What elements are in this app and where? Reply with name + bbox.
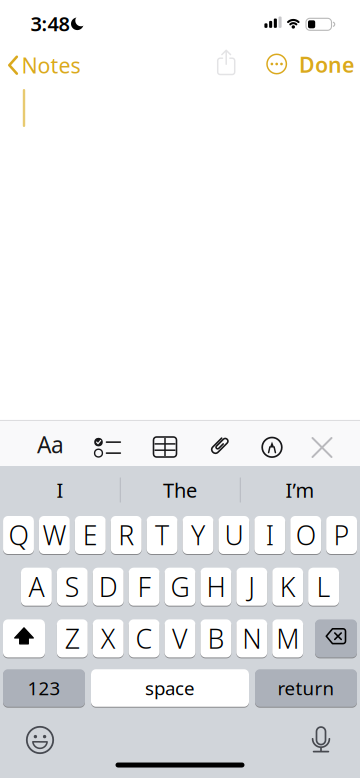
button[interactable]: The [123,473,237,507]
staticText: O [296,517,316,553]
button[interactable]: N [236,619,267,658]
staticText: R [118,517,134,553]
staticText: Notes [21,51,80,79]
staticText: F [138,569,151,604]
staticText: space [145,676,195,700]
button[interactable]: Z [57,619,88,658]
staticText: G [170,569,189,604]
staticText: C [136,621,153,656]
button[interactable]: F [129,567,160,606]
button[interactable] [266,53,287,74]
staticText: I [266,517,274,553]
staticText: T [155,517,169,553]
button[interactable] [260,435,284,459]
button[interactable] [153,437,176,457]
button[interactable]: G [165,567,195,606]
button[interactable]: W [39,515,70,554]
button[interactable] [26,726,54,754]
button[interactable]: I’m [243,473,357,507]
button[interactable]: Aa [37,429,64,459]
button[interactable] [215,49,237,76]
button[interactable]: Y [183,515,213,554]
staticText: The [163,477,197,503]
staticText: E [83,517,98,553]
staticText: S [65,569,80,604]
button[interactable] [206,433,232,459]
button[interactable]: Q [3,515,34,554]
button[interactable]: Done [299,50,354,79]
button[interactable]: P [326,515,357,554]
button[interactable]: S [57,567,88,606]
button[interactable]: B [200,619,231,658]
button[interactable]: U [218,515,249,554]
button[interactable]: V [165,619,195,658]
staticText: N [242,621,261,656]
staticText: Y [191,517,205,553]
button[interactable]: H [200,567,231,606]
staticText: 3:48 [30,10,69,37]
staticText: I’m [285,477,314,503]
button[interactable]: I [254,515,285,554]
staticText: L [317,569,331,604]
button[interactable]: E [75,515,106,554]
button[interactable]: X [93,619,124,658]
button[interactable]: O [290,515,321,554]
staticText: X [101,621,116,656]
button[interactable]: R [111,515,142,554]
staticText: Z [65,621,80,656]
staticText: A [28,569,44,604]
button[interactable]: D [93,567,124,606]
staticText: D [99,569,118,604]
button[interactable]: I [3,473,117,507]
staticText: P [334,517,350,553]
button[interactable] [312,726,330,754]
button[interactable]: L [308,567,339,606]
button[interactable]: C [129,619,160,658]
staticText: W [42,517,66,553]
staticText: M [276,621,299,656]
button[interactable]: A [21,567,52,606]
staticText: Q [8,517,28,553]
button[interactable]: 123 [3,669,85,707]
staticText: J [248,569,255,604]
staticText: 123 [27,676,60,700]
staticText: Aa [37,429,64,459]
button[interactable]: J [236,567,267,606]
button[interactable]: return [255,669,357,707]
staticText: K [280,569,296,604]
button[interactable] [93,437,121,457]
button[interactable] [3,619,45,658]
button[interactable]: Notes [4,55,76,75]
staticText: I [56,477,63,503]
button[interactable] [315,619,357,658]
staticText: U [224,517,243,553]
button[interactable]: space [91,669,249,707]
button[interactable]: T [147,515,178,554]
staticText: B [207,621,224,656]
button[interactable] [312,437,332,457]
staticText: return [277,676,334,700]
staticText: H [206,569,225,604]
button[interactable]: M [272,619,303,658]
button[interactable]: K [272,567,303,606]
staticText: V [172,621,188,656]
staticText: Done [299,50,354,79]
